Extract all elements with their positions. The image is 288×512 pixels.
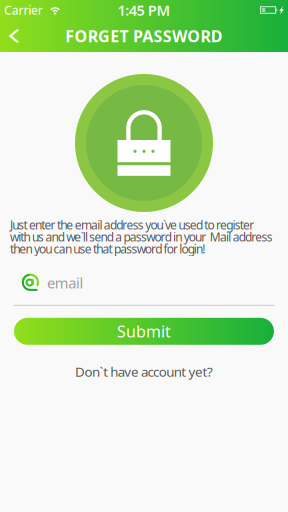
button[interactable]: Don`t have account yet? — [57, 356, 231, 387]
staticText: then you can use that password for login… — [10, 241, 205, 257]
button[interactable]: Back — [0, 20, 28, 51]
staticText: with us and we`ll send a password in you… — [10, 229, 273, 245]
staticText: 1:45 PM — [117, 0, 170, 20]
staticText: Don`t have account yet? — [75, 363, 213, 380]
staticText: Submit — [117, 321, 171, 342]
button[interactable]: Submit — [14, 318, 274, 345]
staticText: FORGET PASSWORD — [65, 25, 223, 47]
staticText: email — [47, 273, 84, 293]
staticText: Carrier — [4, 2, 43, 18]
staticText: Just enter the email address you`ve used… — [10, 217, 254, 233]
